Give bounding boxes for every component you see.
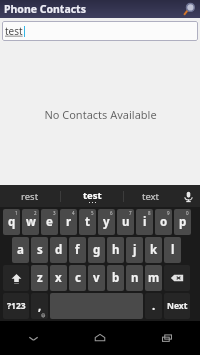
- button[interactable]: test: [61, 185, 123, 207]
- button[interactable]: Home: [66, 321, 133, 355]
- staticText: w: [26, 214, 36, 230]
- staticText: o: [160, 214, 168, 230]
- staticText: i: [143, 214, 147, 230]
- button[interactable]: j: [126, 237, 143, 263]
- button[interactable]: c: [69, 265, 86, 291]
- staticText: 😃: [41, 313, 46, 318]
- button[interactable]: b: [107, 265, 124, 291]
- staticText: z: [37, 270, 43, 286]
- button[interactable]: y: [98, 209, 115, 235]
- staticText: rest: [21, 190, 39, 203]
- button[interactable]: v: [88, 265, 105, 291]
- staticText: 2: [34, 210, 37, 216]
- staticText: e: [46, 214, 53, 230]
- staticText: 3: [53, 210, 56, 216]
- button[interactable]: text: [124, 185, 177, 207]
- button[interactable]: Next: [164, 293, 190, 319]
- staticText: a: [17, 242, 24, 258]
- staticText: m: [148, 270, 160, 286]
- staticText: b: [112, 270, 120, 286]
- button[interactable]: p: [174, 209, 191, 235]
- button[interactable]: o: [155, 209, 172, 235]
- staticText: 1: [15, 210, 18, 216]
- staticText: h: [112, 242, 120, 258]
- staticText: c: [75, 270, 81, 286]
- button[interactable]: m: [145, 265, 162, 291]
- button[interactable]: .: [145, 293, 162, 319]
- staticText: 8: [148, 210, 151, 216]
- button[interactable]: i: [136, 209, 153, 235]
- button[interactable]: h: [107, 237, 124, 263]
- staticText: 0: [186, 210, 189, 216]
- button[interactable]: s: [31, 237, 48, 263]
- staticText: y: [103, 214, 110, 230]
- button[interactable]: t: [79, 209, 96, 235]
- button[interactable]: Hide keyboard: [0, 321, 66, 355]
- button[interactable]: ?123: [3, 293, 29, 319]
- button[interactable]: u: [117, 209, 134, 235]
- staticText: r: [66, 214, 72, 230]
- button[interactable]: a: [12, 237, 29, 263]
- button[interactable]: l: [164, 237, 181, 263]
- staticText: 4: [72, 210, 75, 216]
- staticText: 5: [91, 210, 94, 216]
- staticText: t: [85, 214, 90, 230]
- button[interactable]: f: [69, 237, 86, 263]
- staticText: .: [152, 298, 156, 314]
- button[interactable]: w: [22, 209, 39, 235]
- button[interactable]: rest: [0, 185, 60, 207]
- button[interactable]: x: [50, 265, 67, 291]
- button[interactable]: e: [41, 209, 58, 235]
- staticText: q: [8, 214, 16, 230]
- button[interactable]: Recent apps: [133, 321, 200, 355]
- staticText: v: [93, 270, 100, 286]
- button[interactable]: g: [88, 237, 105, 263]
- staticText: test: [83, 189, 102, 202]
- staticText: g: [93, 242, 101, 258]
- staticText: No Contacts Available: [44, 107, 157, 122]
- staticText: d: [55, 242, 63, 258]
- button[interactable]: Voice input: [177, 185, 200, 207]
- staticText: 9: [167, 210, 170, 216]
- staticText: u: [122, 214, 130, 230]
- staticText: f: [75, 242, 80, 258]
- button[interactable]: Shift: [3, 265, 29, 291]
- staticText: x: [55, 270, 62, 286]
- staticText: ?123: [7, 300, 26, 312]
- staticText: 7: [129, 210, 132, 216]
- staticText: test: [5, 24, 23, 38]
- staticText: p: [179, 214, 187, 230]
- staticText: j: [133, 242, 137, 258]
- button[interactable]: test: [2, 21, 198, 41]
- staticText: ,: [38, 298, 42, 314]
- staticText: s: [37, 242, 43, 258]
- staticText: 6: [110, 210, 113, 216]
- button[interactable]: Search: [181, 1, 197, 17]
- staticText: text: [142, 190, 160, 203]
- staticText: Next: [167, 300, 188, 312]
- button[interactable]: r: [60, 209, 77, 235]
- button[interactable]: ,: [31, 293, 48, 319]
- button[interactable]: Backspace: [164, 265, 190, 291]
- staticText: k: [150, 242, 158, 258]
- staticText: l: [171, 242, 175, 258]
- staticText: n: [131, 270, 139, 286]
- button[interactable]: q: [3, 209, 20, 235]
- staticText: Phone Contacts: [4, 2, 86, 16]
- button[interactable]: n: [126, 265, 143, 291]
- button[interactable]: k: [145, 237, 162, 263]
- button[interactable]: d: [50, 237, 67, 263]
- button[interactable]: z: [31, 265, 48, 291]
